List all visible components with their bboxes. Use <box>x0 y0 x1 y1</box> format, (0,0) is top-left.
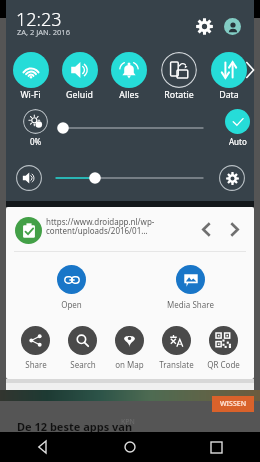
button[interactable]: Auto brightness <box>219 109 255 145</box>
staticText: 12:23 <box>16 7 62 32</box>
button[interactable]: Search <box>62 326 103 370</box>
staticText: Wi-Fi <box>20 89 41 101</box>
button[interactable]: User profile <box>215 9 249 43</box>
staticText: Geluid <box>66 89 93 101</box>
staticText: Share <box>25 359 47 370</box>
button[interactable]: Data <box>204 46 254 102</box>
staticText: KPN <box>121 417 135 427</box>
staticText: ZA, 2 JAN. 2016 <box>17 27 70 37</box>
staticText: Data <box>219 89 239 101</box>
staticText: Translate <box>159 359 194 370</box>
button[interactable]: WISSEN <box>212 396 254 412</box>
staticText: Rotatie <box>164 89 194 101</box>
button[interactable]: Geluid <box>55 46 104 102</box>
button[interactable]: Sound settings <box>219 165 245 191</box>
staticText: WISSEN <box>220 399 247 409</box>
staticText: https://www.droidapp.nl/wp- <box>46 216 155 227</box>
staticText: Auto <box>229 136 247 145</box>
button[interactable]: on Map <box>109 326 150 370</box>
button[interactable]: Share <box>15 326 56 370</box>
button[interactable]: Rotatie <box>154 46 204 102</box>
button[interactable]: Volume <box>16 165 42 191</box>
staticText: content/uploads/2016/01... <box>46 225 148 236</box>
button[interactable]: https://www.droidapp.nl/wp- <box>6 207 254 251</box>
staticText: Media Share <box>167 299 214 310</box>
button[interactable]: Wi-Fi <box>6 46 55 102</box>
button[interactable]: Open <box>31 265 111 310</box>
staticText: Open <box>61 299 82 310</box>
button[interactable]: Alles <box>104 46 154 102</box>
button[interactable]: Home <box>86 432 173 462</box>
button[interactable]: Next <box>222 217 246 241</box>
button[interactable]: Settings <box>188 10 220 42</box>
staticText: 0% <box>30 136 42 145</box>
button[interactable]: Back <box>0 432 86 462</box>
staticText: Alles <box>119 89 139 101</box>
staticText: Search <box>70 359 96 370</box>
button[interactable]: Media Share <box>150 265 230 310</box>
button[interactable]: Translate <box>156 326 197 370</box>
staticText: on Map <box>115 359 144 370</box>
staticText: QR Code <box>207 359 240 370</box>
button[interactable]: Recents <box>173 432 260 462</box>
button[interactable]: QR Code <box>203 326 244 370</box>
staticText: De 12 beste apps van <box>17 419 133 434</box>
button[interactable]: Brightness <box>17 109 53 145</box>
button[interactable]: Previous <box>194 217 218 241</box>
